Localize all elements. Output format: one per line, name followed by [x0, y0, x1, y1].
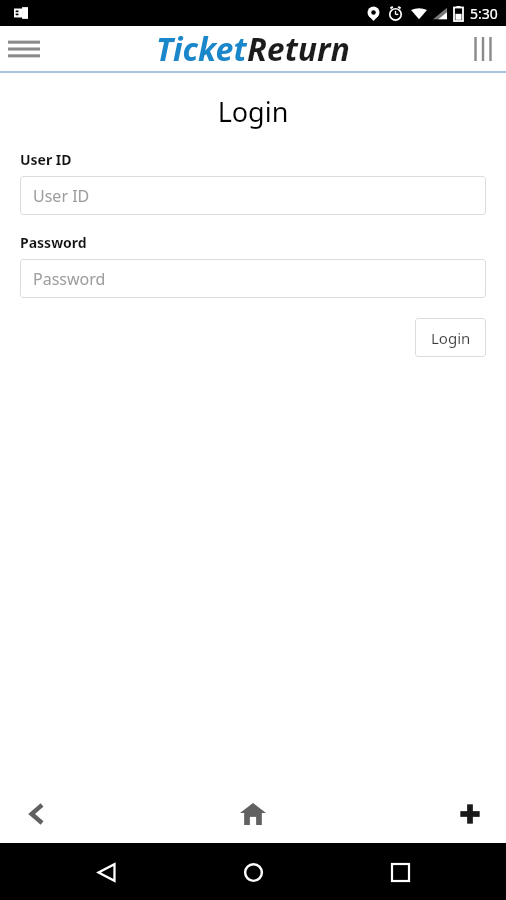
button[interactable]: System back — [84, 850, 128, 894]
button[interactable]: Password — [20, 259, 486, 298]
button[interactable]: System home — [231, 850, 275, 894]
staticText: Password — [20, 233, 87, 252]
staticText: User ID — [20, 150, 72, 169]
staticText: Password — [33, 268, 106, 290]
button[interactable]: User ID — [20, 176, 486, 215]
staticText: User ID — [33, 185, 90, 207]
staticText: Ticket — [156, 27, 247, 71]
staticText: Login — [0, 93, 506, 130]
button[interactable]: Recent apps — [378, 850, 422, 894]
button[interactable]: Home — [225, 786, 281, 842]
button[interactable]: Login — [415, 318, 486, 357]
staticText: Login — [431, 328, 471, 348]
button[interactable]: More options — [460, 26, 506, 71]
staticText: Return — [247, 27, 350, 71]
button[interactable]: Add — [442, 786, 498, 842]
button[interactable]: Back — [8, 786, 64, 842]
staticText: 5:30 — [470, 4, 498, 23]
button[interactable]: Open navigation menu — [0, 26, 48, 71]
